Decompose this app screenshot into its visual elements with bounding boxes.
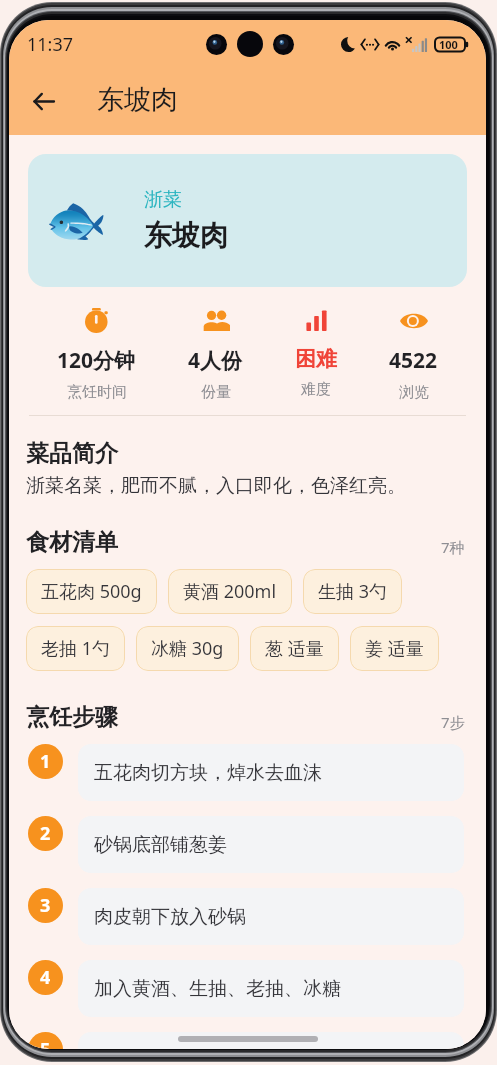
staticText: 黄酒 200ml [183,579,277,604]
staticText: 4 [40,965,51,990]
staticText: 老抽 1勺 [41,636,110,661]
button[interactable]: 🐟 [28,154,467,287]
button[interactable]: 姜 适量 [350,626,439,671]
button[interactable]: 砂锅底部铺葱姜 [78,816,464,873]
staticText: 烹饪时间 [67,383,127,402]
staticText: 冰糖 30g [151,636,224,661]
button[interactable]: 困难 [295,307,337,399]
button[interactable]: 黄酒 200ml [168,569,292,614]
staticText: 五花肉 500g [41,579,142,604]
button[interactable]: 加入黄酒、生抽、老抽、冰糖 [78,960,464,1017]
staticText: 菜品简介 [26,439,118,468]
button[interactable]: 小火慢炖 [78,1032,464,1049]
staticText: 🐟 [45,191,108,250]
staticText: 难度 [301,380,331,399]
button[interactable]: 肉皮朝下放入砂锅 [78,888,464,945]
staticText: 东坡肉 [97,83,178,117]
staticText: 困难 [295,346,337,372]
staticText: 葱 适量 [265,636,324,661]
staticText: 7种 [441,537,465,557]
staticText: 五花肉切方块，焯水去血沫 [94,761,322,785]
staticText: 浏览 [399,383,429,402]
button[interactable]: Back [24,82,63,121]
button[interactable]: 五花肉切方块，焯水去血沫 [78,744,464,801]
staticText: 3 [40,893,51,918]
staticText: 4522 [389,346,438,375]
staticText: 1 [40,749,51,774]
button[interactable]: 葱 适量 [250,626,339,671]
staticText: 4人份 [188,346,243,375]
staticText: 浙菜名菜，肥而不腻，入口即化，色泽红亮。 [26,474,406,498]
button[interactable]: 冰糖 30g [136,626,239,671]
staticText: 东坡肉 [144,218,228,253]
staticText: 姜 适量 [365,636,424,661]
button[interactable]: 五花肉 500g [26,569,157,614]
staticText: 2 [40,821,51,846]
staticText: 100 [439,37,458,52]
staticText: 5 [40,1037,51,1049]
staticText: 份量 [201,383,231,402]
staticText: 烹饪步骤 [26,703,118,732]
staticText: 7步 [441,712,465,732]
staticText: 加入黄酒、生抽、老抽、冰糖 [94,977,341,1001]
staticText: 肉皮朝下放入砂锅 [94,905,246,929]
button[interactable]: 老抽 1勺 [26,626,125,671]
staticText: 食材清单 [26,528,118,557]
button[interactable]: 120分钟 [57,307,136,402]
button[interactable]: 4人份 [188,307,243,402]
staticText: 浙菜 [144,188,182,212]
staticText: 11:37 [27,32,74,57]
staticText: 砂锅底部铺葱姜 [94,833,227,857]
button[interactable]: 生抽 3勺 [303,569,402,614]
button[interactable]: 4522 [389,307,438,402]
staticText: 生抽 3勺 [318,579,387,604]
staticText: 120分钟 [57,346,136,375]
